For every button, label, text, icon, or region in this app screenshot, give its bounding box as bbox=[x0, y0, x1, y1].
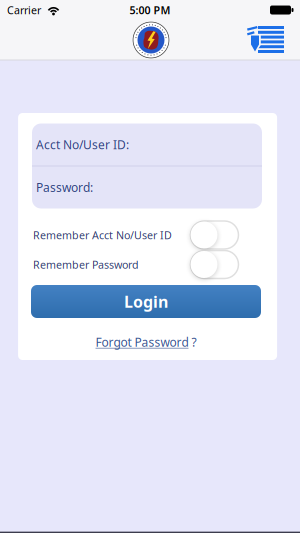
button[interactable]: Remember Password bbox=[190, 250, 238, 278]
staticText: Remember Password bbox=[33, 257, 139, 272]
button[interactable]: Acct No/User ID bbox=[36, 124, 258, 166]
staticText: Password: bbox=[36, 179, 93, 195]
button[interactable]: Forgot Password ? bbox=[95, 334, 196, 350]
staticText: Carrier bbox=[7, 3, 41, 17]
button[interactable]: Remember Acct No/User ID bbox=[190, 221, 238, 249]
staticText: Login bbox=[124, 291, 168, 312]
button[interactable]: Password bbox=[36, 166, 258, 208]
button[interactable]: Login bbox=[31, 285, 261, 318]
staticText: Forgot Password ? bbox=[95, 334, 196, 350]
staticText: 5:00 PM bbox=[129, 3, 170, 17]
button[interactable]: Forms bbox=[247, 25, 285, 55]
staticText: Remember Acct No/User ID bbox=[33, 228, 172, 242]
staticText: Acct No/User ID: bbox=[36, 137, 129, 153]
